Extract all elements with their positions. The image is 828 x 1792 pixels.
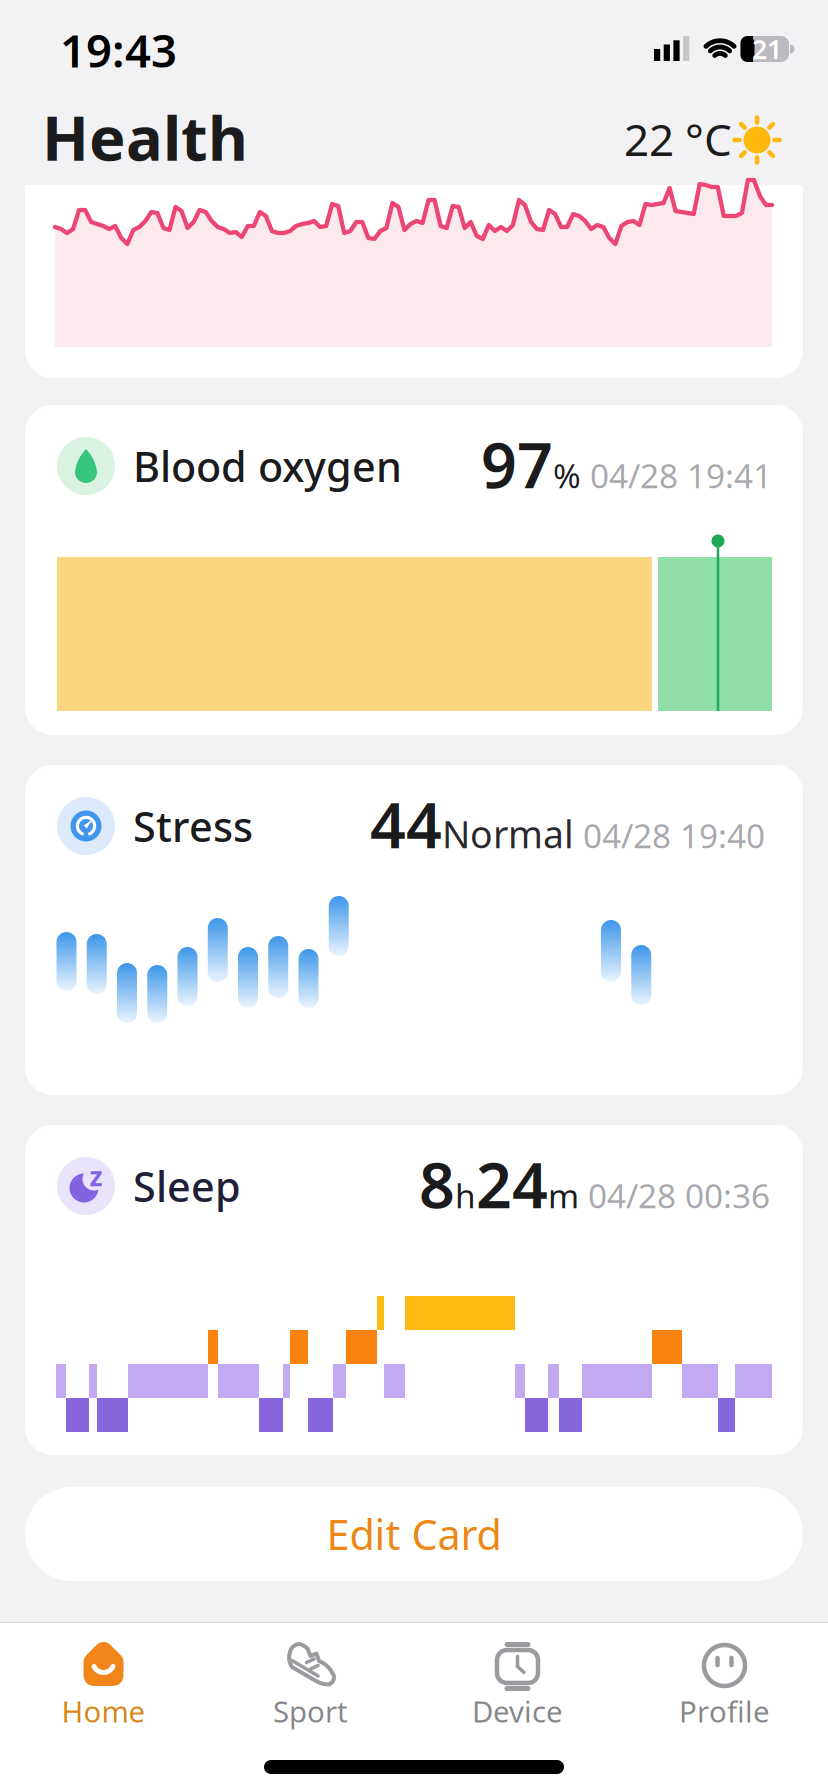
- staticText: m: [548, 1173, 579, 1217]
- staticText: Edit Card: [326, 1507, 501, 1561]
- staticText: 44: [370, 782, 442, 866]
- staticText: Home: [61, 1691, 145, 1730]
- staticText: Stress: [133, 799, 253, 853]
- staticText: h: [455, 1173, 476, 1217]
- staticText: %: [553, 453, 581, 497]
- staticText: 24: [476, 1142, 548, 1226]
- staticText: Sport: [273, 1691, 348, 1730]
- staticText: 21: [752, 31, 782, 67]
- staticText: Profile: [679, 1691, 770, 1730]
- staticText: 04/28 00:36: [579, 1173, 770, 1217]
- staticText: Normal: [442, 809, 574, 859]
- staticText: Health: [42, 96, 248, 178]
- staticText: 04/28 19:41: [581, 453, 772, 497]
- staticText: 22 °C: [624, 110, 732, 168]
- staticText: 97: [481, 422, 553, 506]
- staticText: 19:43: [60, 20, 177, 80]
- staticText: Device: [472, 1691, 563, 1730]
- staticText: 8: [419, 1142, 455, 1226]
- staticText: 04/28 19:40: [574, 813, 765, 857]
- staticText: Blood oxygen: [133, 439, 402, 493]
- staticText: z: [89, 1158, 102, 1194]
- staticText: Sleep: [133, 1159, 241, 1213]
